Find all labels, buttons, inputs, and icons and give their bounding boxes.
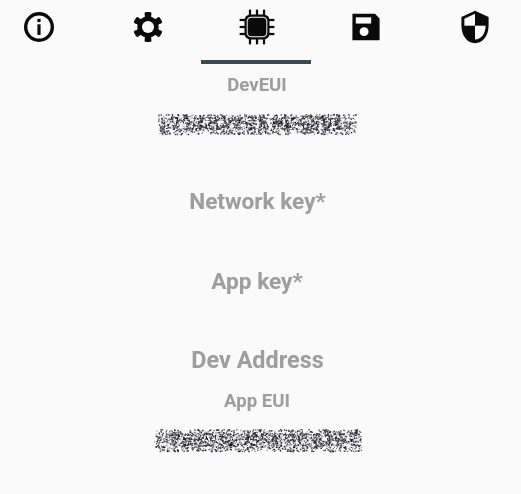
button[interactable]: App EUI <box>57 379 457 423</box>
staticText: 70B3D58FF1026199 <box>170 114 344 134</box>
button[interactable]: DevEUI <box>57 63 457 107</box>
staticText: App key* <box>211 268 303 294</box>
staticText: Dev Address <box>191 346 324 373</box>
button[interactable]: Network key* <box>57 179 457 223</box>
button[interactable]: Security <box>447 0 503 56</box>
button[interactable]: App key* <box>57 259 457 303</box>
button[interactable]: Settings <box>120 0 176 56</box>
button[interactable]: 260B3D58FF102619 <box>148 429 367 451</box>
button[interactable]: Dev Address <box>57 337 457 381</box>
staticText: 260B3D58FF102619 <box>171 430 345 451</box>
button[interactable]: Info <box>11 0 67 56</box>
button[interactable]: 70B3D58FF1026199 <box>152 114 362 134</box>
button[interactable]: Device <box>229 0 285 56</box>
staticText: DevEUI <box>227 74 287 96</box>
button[interactable]: Save <box>338 0 394 56</box>
staticText: Network key* <box>189 188 326 214</box>
staticText: App EUI <box>224 390 290 412</box>
